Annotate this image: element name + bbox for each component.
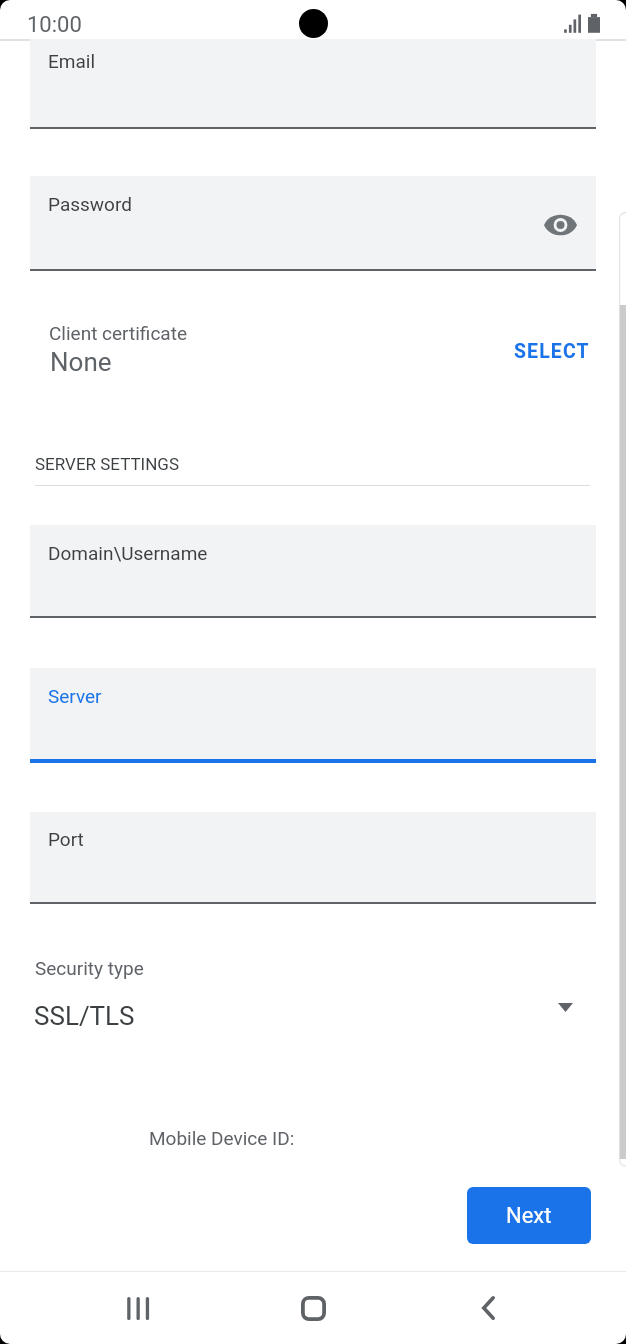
button[interactable]: Show password bbox=[538, 202, 582, 247]
staticText: Server bbox=[48, 685, 102, 707]
staticText: Mobile Device ID: bbox=[149, 1127, 295, 1149]
button[interactable]: Server bbox=[30, 668, 596, 762]
staticText: Security type bbox=[35, 957, 144, 979]
staticText: Password bbox=[48, 193, 132, 215]
button[interactable]: SELECT bbox=[504, 328, 600, 374]
staticText: None bbox=[50, 347, 112, 377]
button[interactable]: Home bbox=[273, 1272, 353, 1344]
staticText: 10:00 bbox=[27, 12, 82, 38]
button[interactable]: Recent apps bbox=[98, 1272, 178, 1344]
button[interactable]: Back bbox=[448, 1272, 528, 1344]
staticText: SSL/TLS bbox=[34, 1001, 135, 1031]
button[interactable]: Security type bbox=[0, 950, 626, 1036]
button[interactable]: Password bbox=[30, 176, 596, 271]
button[interactable]: Domain\Username bbox=[30, 525, 596, 618]
button[interactable]: Client certificate bbox=[0, 310, 626, 390]
button[interactable]: Next bbox=[467, 1187, 591, 1244]
staticText: SERVER SETTINGS bbox=[35, 454, 180, 474]
staticText: Client certificate bbox=[49, 322, 187, 344]
button[interactable]: Email bbox=[30, 39, 596, 129]
staticText: SELECT bbox=[514, 340, 590, 363]
staticText: Port bbox=[48, 828, 84, 850]
staticText: Domain\Username bbox=[48, 542, 208, 564]
staticText: Email bbox=[48, 50, 96, 72]
staticText: Next bbox=[506, 1203, 552, 1229]
button[interactable]: Port bbox=[30, 812, 596, 904]
